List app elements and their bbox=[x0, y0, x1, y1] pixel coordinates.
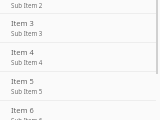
staticText: Sub Item 3 bbox=[11, 29, 43, 37]
button[interactable]: Item 3 bbox=[0, 14, 160, 42]
staticText: Item 4 bbox=[11, 47, 34, 57]
button[interactable]: Item 6 bbox=[0, 101, 160, 120]
button[interactable]: Item 4 bbox=[0, 43, 160, 71]
staticText: Sub Item 5 bbox=[11, 87, 43, 95]
staticText: Item 5 bbox=[11, 76, 34, 86]
button[interactable]: Sub Item 2 bbox=[0, 0, 160, 13]
staticText: Sub Item 2 bbox=[11, 1, 43, 9]
staticText: Sub Item 4 bbox=[11, 58, 43, 66]
staticText: Sub Item 6 bbox=[11, 116, 43, 120]
staticText: Item 6 bbox=[11, 105, 34, 115]
staticText: Item 3 bbox=[11, 18, 34, 28]
button[interactable]: Item 5 bbox=[0, 72, 160, 100]
